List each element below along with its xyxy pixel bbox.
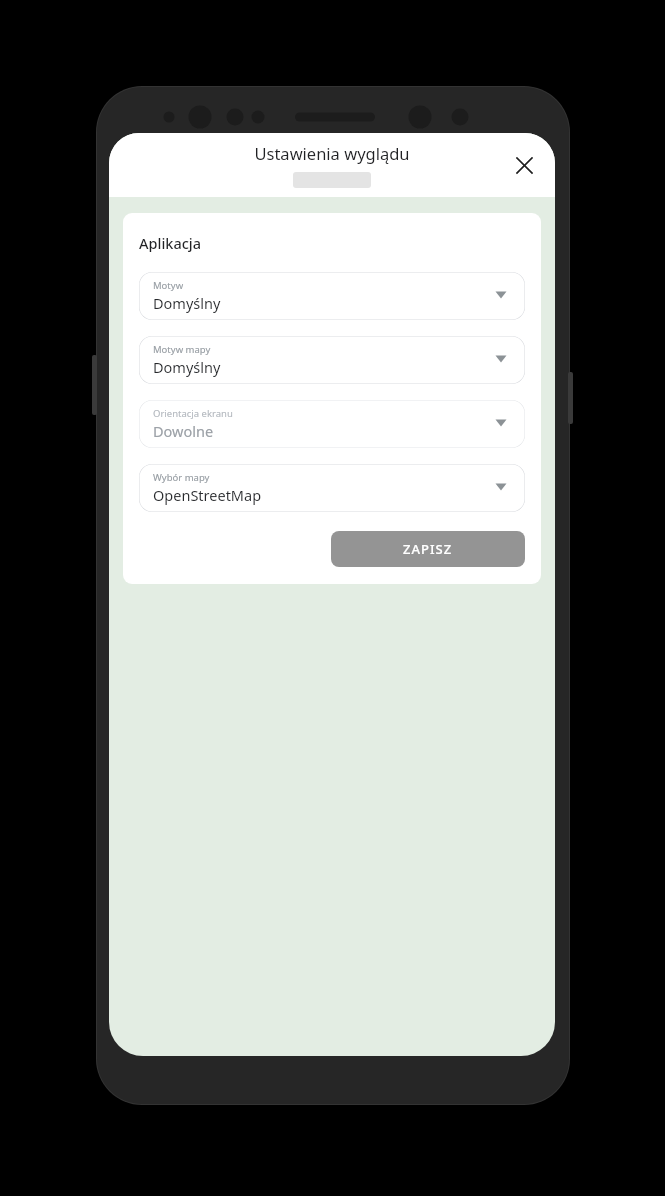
staticText: Ustawienia wyglądu (109, 142, 555, 164)
button[interactable]: Motyw (139, 272, 525, 320)
staticText: Orientacja ekranu (153, 407, 233, 420)
button[interactable]: Motyw mapy (139, 336, 525, 384)
button[interactable]: Orientacja ekranu (139, 400, 525, 448)
staticText: Motyw (153, 279, 184, 292)
button[interactable]: Wybór mapy (139, 464, 525, 512)
staticText: Domyślny (153, 357, 221, 377)
staticText: OpenStreetMap (153, 485, 262, 505)
button[interactable]: ZAPISZ (331, 531, 525, 567)
staticText: Motyw mapy (153, 343, 211, 356)
staticText: Dowolne (153, 421, 214, 441)
staticText: ZAPISZ (403, 540, 453, 558)
staticText: Wybór mapy (153, 471, 210, 484)
staticText: Domyślny (153, 293, 221, 313)
staticText: Aplikacja (139, 233, 202, 253)
button[interactable]: Zamknij (502, 143, 546, 187)
